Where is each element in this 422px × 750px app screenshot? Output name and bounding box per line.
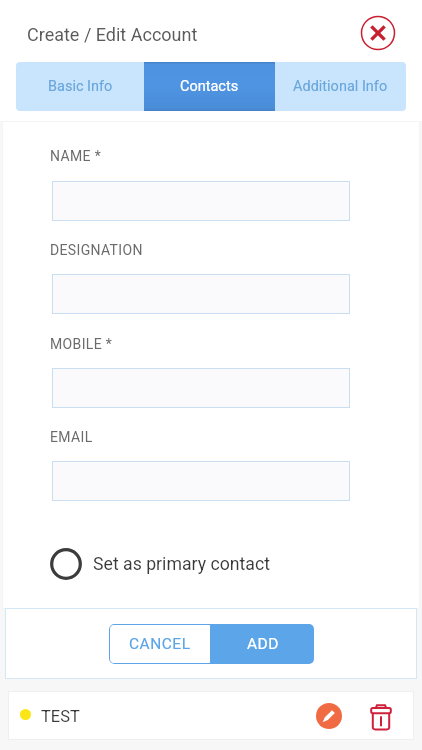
staticText: Basic Info xyxy=(48,78,113,95)
staticText: ADD xyxy=(247,635,279,653)
staticText: Create / Edit Account xyxy=(27,24,198,45)
staticText: DESIGNATION xyxy=(50,242,143,258)
staticText: Set as primary contact xyxy=(93,554,271,575)
button[interactable]: ADD xyxy=(211,624,314,664)
button[interactable] xyxy=(52,274,350,314)
button[interactable]: Set as primary contact xyxy=(49,547,271,581)
button[interactable]: Basic Info xyxy=(16,62,144,111)
button[interactable]: Additional Info xyxy=(275,62,406,111)
button[interactable] xyxy=(52,368,350,408)
staticText: CANCEL xyxy=(129,635,191,653)
staticText: EMAIL xyxy=(50,429,93,445)
staticText: TEST xyxy=(41,707,80,726)
button[interactable]: Close xyxy=(359,14,396,51)
button[interactable]: Edit xyxy=(312,699,346,733)
staticText: MOBILE * xyxy=(50,336,113,352)
button[interactable]: Delete xyxy=(364,700,398,734)
button[interactable]: Contacts xyxy=(144,62,275,111)
staticText: NAME * xyxy=(50,148,102,164)
staticText: Additional Info xyxy=(293,78,388,95)
button[interactable] xyxy=(52,461,350,501)
button[interactable]: TEST xyxy=(8,691,414,740)
staticText: Contacts xyxy=(180,78,239,95)
button[interactable]: CANCEL xyxy=(109,624,211,664)
button[interactable] xyxy=(52,181,350,221)
